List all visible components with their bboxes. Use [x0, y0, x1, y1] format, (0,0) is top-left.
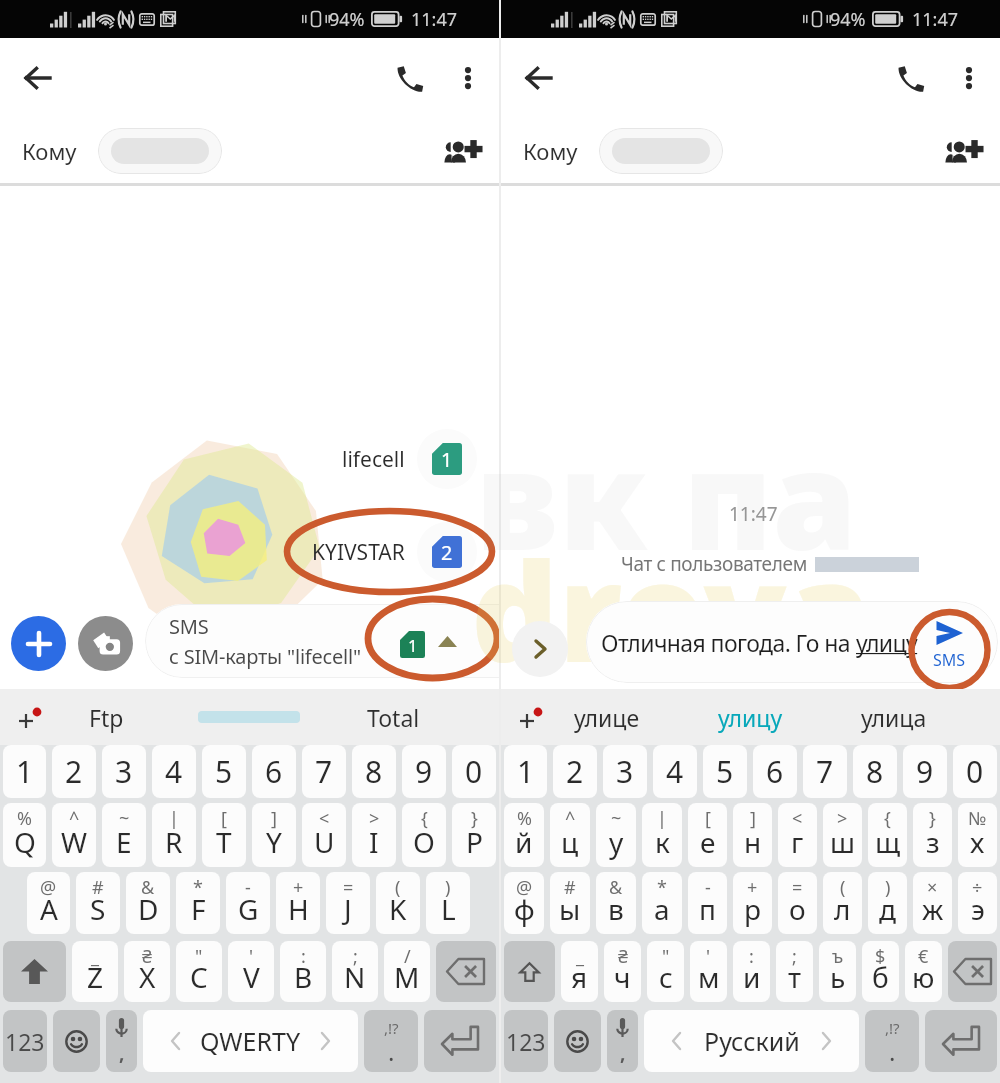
button[interactable]: } [452, 803, 496, 867]
button[interactable]: & [596, 872, 636, 934]
button[interactable]: < [302, 803, 346, 867]
button[interactable]: улица [826, 689, 962, 745]
button[interactable]: 1 [504, 745, 547, 798]
button[interactable]: Отличная погода. Го на [586, 601, 998, 683]
button[interactable]: ' [228, 941, 274, 1002]
button[interactable]: [ [688, 803, 727, 867]
button[interactable]: 6 [252, 745, 296, 798]
button[interactable]: QWERTY [143, 1010, 358, 1072]
button[interactable]: 2 [553, 745, 597, 798]
button[interactable]: | [152, 803, 196, 867]
button[interactable]: Add recipient [438, 127, 486, 175]
button[interactable]: > [823, 803, 862, 867]
button[interactable]: @ [504, 872, 544, 934]
button[interactable]: 0 [953, 745, 997, 798]
button[interactable]: Русский [644, 1010, 859, 1072]
button[interactable]: 5 [703, 745, 747, 798]
button[interactable]: Ftp [38, 689, 174, 745]
button[interactable]: enter [925, 1010, 997, 1072]
button[interactable]: shift [3, 941, 66, 1002]
button[interactable]: ] [252, 803, 296, 867]
button[interactable]: " [176, 941, 222, 1002]
button[interactable]: 6 [753, 745, 797, 798]
button[interactable]: $ [862, 941, 899, 1002]
button[interactable]: Add [4, 695, 48, 739]
button[interactable]: 3 [603, 745, 647, 798]
button[interactable]: + [733, 872, 772, 934]
button[interactable]: # [550, 872, 590, 934]
button[interactable]: shiftOutline [504, 941, 555, 1002]
button[interactable]: More options [946, 55, 992, 101]
button[interactable]: ^ [550, 803, 590, 867]
button[interactable]: < [778, 803, 817, 867]
button[interactable]: } [913, 803, 952, 867]
button[interactable]: emoji [554, 1010, 601, 1072]
button[interactable]: punct [865, 1010, 919, 1072]
button[interactable] [599, 128, 723, 174]
button[interactable]: улице [539, 689, 675, 745]
button[interactable]: * [642, 872, 682, 934]
button[interactable]: ( [823, 872, 862, 934]
button[interactable]: 3 [102, 745, 146, 798]
button[interactable]: ( [376, 872, 420, 934]
button[interactable]: Back [13, 54, 61, 102]
button[interactable]: mic [106, 1010, 137, 1072]
button[interactable]: + [276, 872, 320, 934]
button[interactable]: lifecell [336, 427, 483, 491]
button[interactable]: ) [868, 872, 907, 934]
button[interactable]: > [352, 803, 396, 867]
button[interactable]: 7 [803, 745, 847, 798]
button[interactable]: : [733, 941, 770, 1002]
button[interactable]: _ [72, 941, 118, 1002]
button[interactable]: № [958, 803, 997, 867]
button[interactable]: Call [887, 54, 935, 102]
button[interactable]: Send SMS [909, 611, 990, 692]
button[interactable]: Expand [512, 621, 568, 677]
button[interactable]: 4 [653, 745, 697, 798]
button[interactable]: Add [505, 695, 549, 739]
button[interactable]: × [913, 872, 952, 934]
button[interactable]: backspace [948, 941, 997, 1002]
button[interactable]: { [402, 803, 446, 867]
button[interactable]: ~ [596, 803, 636, 867]
button[interactable]: 123 [3, 1010, 47, 1072]
button[interactable]: _ [561, 941, 598, 1002]
button[interactable]: ÷ [958, 872, 997, 934]
button[interactable]: More options [445, 55, 491, 101]
button[interactable]: 8 [853, 745, 897, 798]
button[interactable]: 7 [302, 745, 346, 798]
button[interactable]: enter [424, 1010, 496, 1072]
button[interactable]: 1 [3, 745, 46, 798]
button[interactable]: & [126, 872, 170, 934]
button[interactable]: 9 [402, 745, 446, 798]
button[interactable]: = [778, 872, 817, 934]
button[interactable]: # [76, 872, 120, 934]
button[interactable]: улицу [682, 689, 818, 745]
button[interactable]: 0 [452, 745, 496, 798]
button[interactable]: - [688, 872, 727, 934]
button[interactable]: Total [325, 689, 461, 745]
button[interactable]: 8 [352, 745, 396, 798]
button[interactable]: ~ [102, 803, 146, 867]
button[interactable]: " [647, 941, 684, 1002]
button[interactable]: ъ [819, 941, 856, 1002]
button[interactable]: KYIVSTAR [306, 520, 483, 584]
button[interactable]: ) [426, 872, 470, 934]
button[interactable]: { [868, 803, 907, 867]
button[interactable]: backspace [436, 941, 496, 1002]
button[interactable]: SMS [145, 604, 535, 678]
button[interactable]: Back [514, 54, 562, 102]
button[interactable]: 4 [152, 745, 196, 798]
button[interactable]: ₴ [604, 941, 641, 1002]
button[interactable]: ' [690, 941, 727, 1002]
button[interactable]: punct [364, 1010, 418, 1072]
button[interactable]: [ [202, 803, 246, 867]
button[interactable]: Add recipient [939, 127, 987, 175]
button[interactable]: 123 [504, 1010, 548, 1072]
button[interactable]: ] [733, 803, 772, 867]
button[interactable]: Camera [78, 616, 133, 671]
button[interactable]: 9 [903, 745, 947, 798]
button[interactable]: € [905, 941, 942, 1002]
button[interactable]: / [384, 941, 430, 1002]
button[interactable]: % [3, 803, 46, 867]
